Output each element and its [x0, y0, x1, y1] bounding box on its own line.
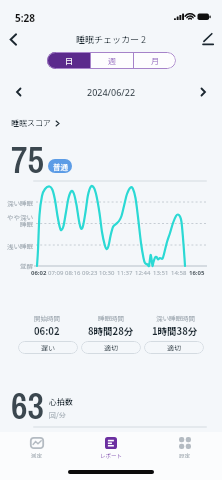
- staticText: レポート: [100, 452, 123, 460]
- button[interactable]: レポート: [74, 432, 148, 465]
- staticText: 睡眠スコア: [11, 117, 51, 129]
- staticText: 06:02: [31, 269, 48, 277]
- staticText: 浅い睡眠: [3, 241, 33, 250]
- staticText: やや深い 睡眠: [3, 212, 33, 229]
- button[interactable]: 睡眠スコア: [11, 117, 60, 129]
- button[interactable]: 適切: [81, 341, 141, 354]
- staticText: 14:58: [171, 269, 189, 277]
- button[interactable]: 週: [91, 52, 133, 69]
- staticText: 測定: [31, 452, 43, 460]
- staticText: 16:05: [189, 269, 207, 277]
- staticText: 10:30: [99, 269, 117, 277]
- staticText: 覚醒: [3, 261, 33, 270]
- staticText: 11:37: [117, 269, 135, 277]
- staticText: 深い睡眠: [3, 198, 33, 207]
- staticText: 遅い: [41, 343, 55, 353]
- button[interactable]: 月: [134, 52, 176, 69]
- button[interactable]: 測定: [0, 432, 74, 465]
- staticText: 適切: [104, 343, 118, 353]
- staticText: 08:16: [65, 269, 82, 277]
- staticText: 5:28: [15, 11, 35, 25]
- staticText: 75: [11, 136, 44, 184]
- staticText: 09:23: [82, 269, 99, 277]
- staticText: 適切: [167, 343, 181, 353]
- staticText: 2024/06/22: [87, 86, 136, 98]
- button[interactable]: 適切: [144, 341, 204, 354]
- button[interactable]: Next day: [192, 81, 214, 103]
- button[interactable]: 設定: [148, 432, 222, 465]
- staticText: 1時間38分: [152, 324, 198, 338]
- button[interactable]: Back: [2, 28, 24, 50]
- staticText: 心拍数: [49, 396, 73, 408]
- staticText: 63: [11, 382, 44, 430]
- button[interactable]: 遅い: [18, 341, 78, 354]
- staticText: 13:51: [153, 269, 171, 277]
- staticText: 睡眠チェッカー 2: [76, 33, 147, 46]
- staticText: 日: [65, 55, 73, 67]
- staticText: 8時間28分: [88, 324, 134, 338]
- staticText: 07:09: [48, 269, 65, 277]
- staticText: 月: [151, 55, 159, 67]
- staticText: 12:44: [135, 269, 153, 277]
- button[interactable]: Previous day: [8, 81, 30, 103]
- staticText: 設定: [179, 452, 191, 460]
- button[interactable]: Edit: [197, 28, 219, 50]
- staticText: 普通: [53, 161, 68, 172]
- staticText: 深い睡眠時間: [156, 313, 195, 322]
- staticText: 06:02: [34, 324, 60, 338]
- button[interactable]: 日: [47, 52, 90, 69]
- staticText: 開始時間: [34, 313, 60, 322]
- staticText: 回/分: [49, 410, 66, 420]
- staticText: 睡眠時間: [98, 313, 124, 322]
- staticText: 週: [108, 55, 116, 67]
